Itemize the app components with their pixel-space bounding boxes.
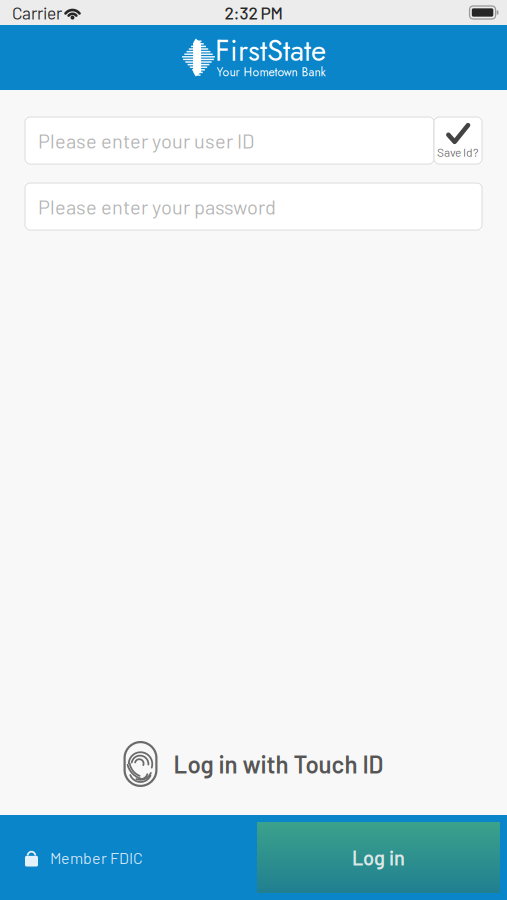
staticText: Member FDIC [50,848,143,867]
staticText: Log in with Touch ID [173,750,383,778]
button[interactable]: Log in with Touch ID [117,735,389,793]
staticText: 2:32 PM [224,2,282,23]
staticText: FirstState [215,29,326,72]
button[interactable]: Member FDIC [0,834,153,881]
staticText: Please enter your user ID [38,128,254,152]
button[interactable]: Save Id? [434,117,482,164]
staticText: Log in [352,845,405,869]
staticText: Save Id? [437,145,479,159]
staticText: Please enter your password [38,194,276,218]
button[interactable]: Log in [257,822,500,893]
staticText: Carrier [12,2,62,23]
staticText: Your Hometown Bank [216,63,325,81]
